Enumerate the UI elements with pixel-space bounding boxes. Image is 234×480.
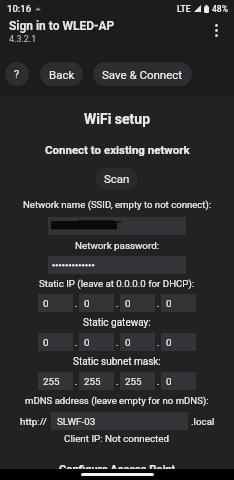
staticText: . [116,298,119,309]
staticText: Static IP (leave at 0.0.0.0 for DHCP): [39,278,195,289]
button[interactable]: 0 [79,333,114,351]
button[interactable]: 0 [38,294,73,312]
staticText: . [75,298,78,309]
staticText: Network password: [75,240,160,251]
button[interactable]: 0 [161,294,196,312]
staticText: mDNS address (leave empty for no mDNS): [25,395,209,406]
button[interactable]: 0 [79,294,114,312]
staticText: Back [49,68,75,81]
staticText: 0 [166,376,172,387]
staticText: 0 [84,298,90,309]
button[interactable]: More options [203,17,229,43]
button[interactable] [48,256,186,274]
staticText: SLWF-03 [57,416,96,427]
button[interactable]: 0 [161,372,196,390]
staticText: . [157,337,160,348]
staticText: 0 [43,337,49,348]
staticText: Sign in to WLED-AP [9,19,115,33]
staticText: . [116,376,119,387]
button[interactable]: 0 [161,333,196,351]
staticText: Connect to existing network [45,143,190,156]
staticText: LTE [177,4,191,14]
button[interactable]: 0 [120,294,155,312]
button[interactable]: Save & Connect [93,62,192,86]
staticText: 10:16 [7,3,32,14]
staticText: 0 [43,298,49,309]
staticText: 4.3.2.1 [9,34,37,45]
staticText: 0 [125,337,131,348]
staticText: WiFi setup [84,111,151,127]
button[interactable]: 255 [38,372,73,390]
button[interactable]: 255 [120,372,155,390]
staticText: 0 [166,337,172,348]
staticText: . [157,298,160,309]
staticText: 255 [43,376,60,387]
staticText: http:// [20,416,47,427]
staticText: . [75,376,78,387]
staticText: . [116,337,119,348]
staticText: Static gateway: [83,317,151,329]
staticText: ? [14,68,20,81]
button[interactable]: 0 [120,333,155,351]
staticText: Configure Access Point [59,463,176,476]
button[interactable]: Scan [96,168,138,189]
staticText: 255 [84,376,101,387]
button[interactable]: SLWF-03 [51,412,188,430]
button[interactable] [48,217,186,235]
staticText: . [157,376,160,387]
staticText: . [75,337,78,348]
staticText: Static subnet mask: [73,356,161,368]
staticText: 0 [84,337,90,348]
staticText: 255 [125,376,142,387]
button[interactable]: 255 [79,372,114,390]
button[interactable]: Back [40,62,83,86]
staticText: 0 [125,298,131,309]
staticText: Client IP: Not connected [64,433,170,444]
staticText: 0 [166,298,172,309]
staticText: 48% [212,4,228,14]
staticText: Scan [104,172,130,185]
staticText: Network name (SSID, empty to not connect… [23,199,212,210]
button[interactable]: 0 [38,333,73,351]
staticText: .local [191,416,215,427]
button[interactable]: Help [5,62,29,86]
staticText: Save & Connect [102,68,183,81]
